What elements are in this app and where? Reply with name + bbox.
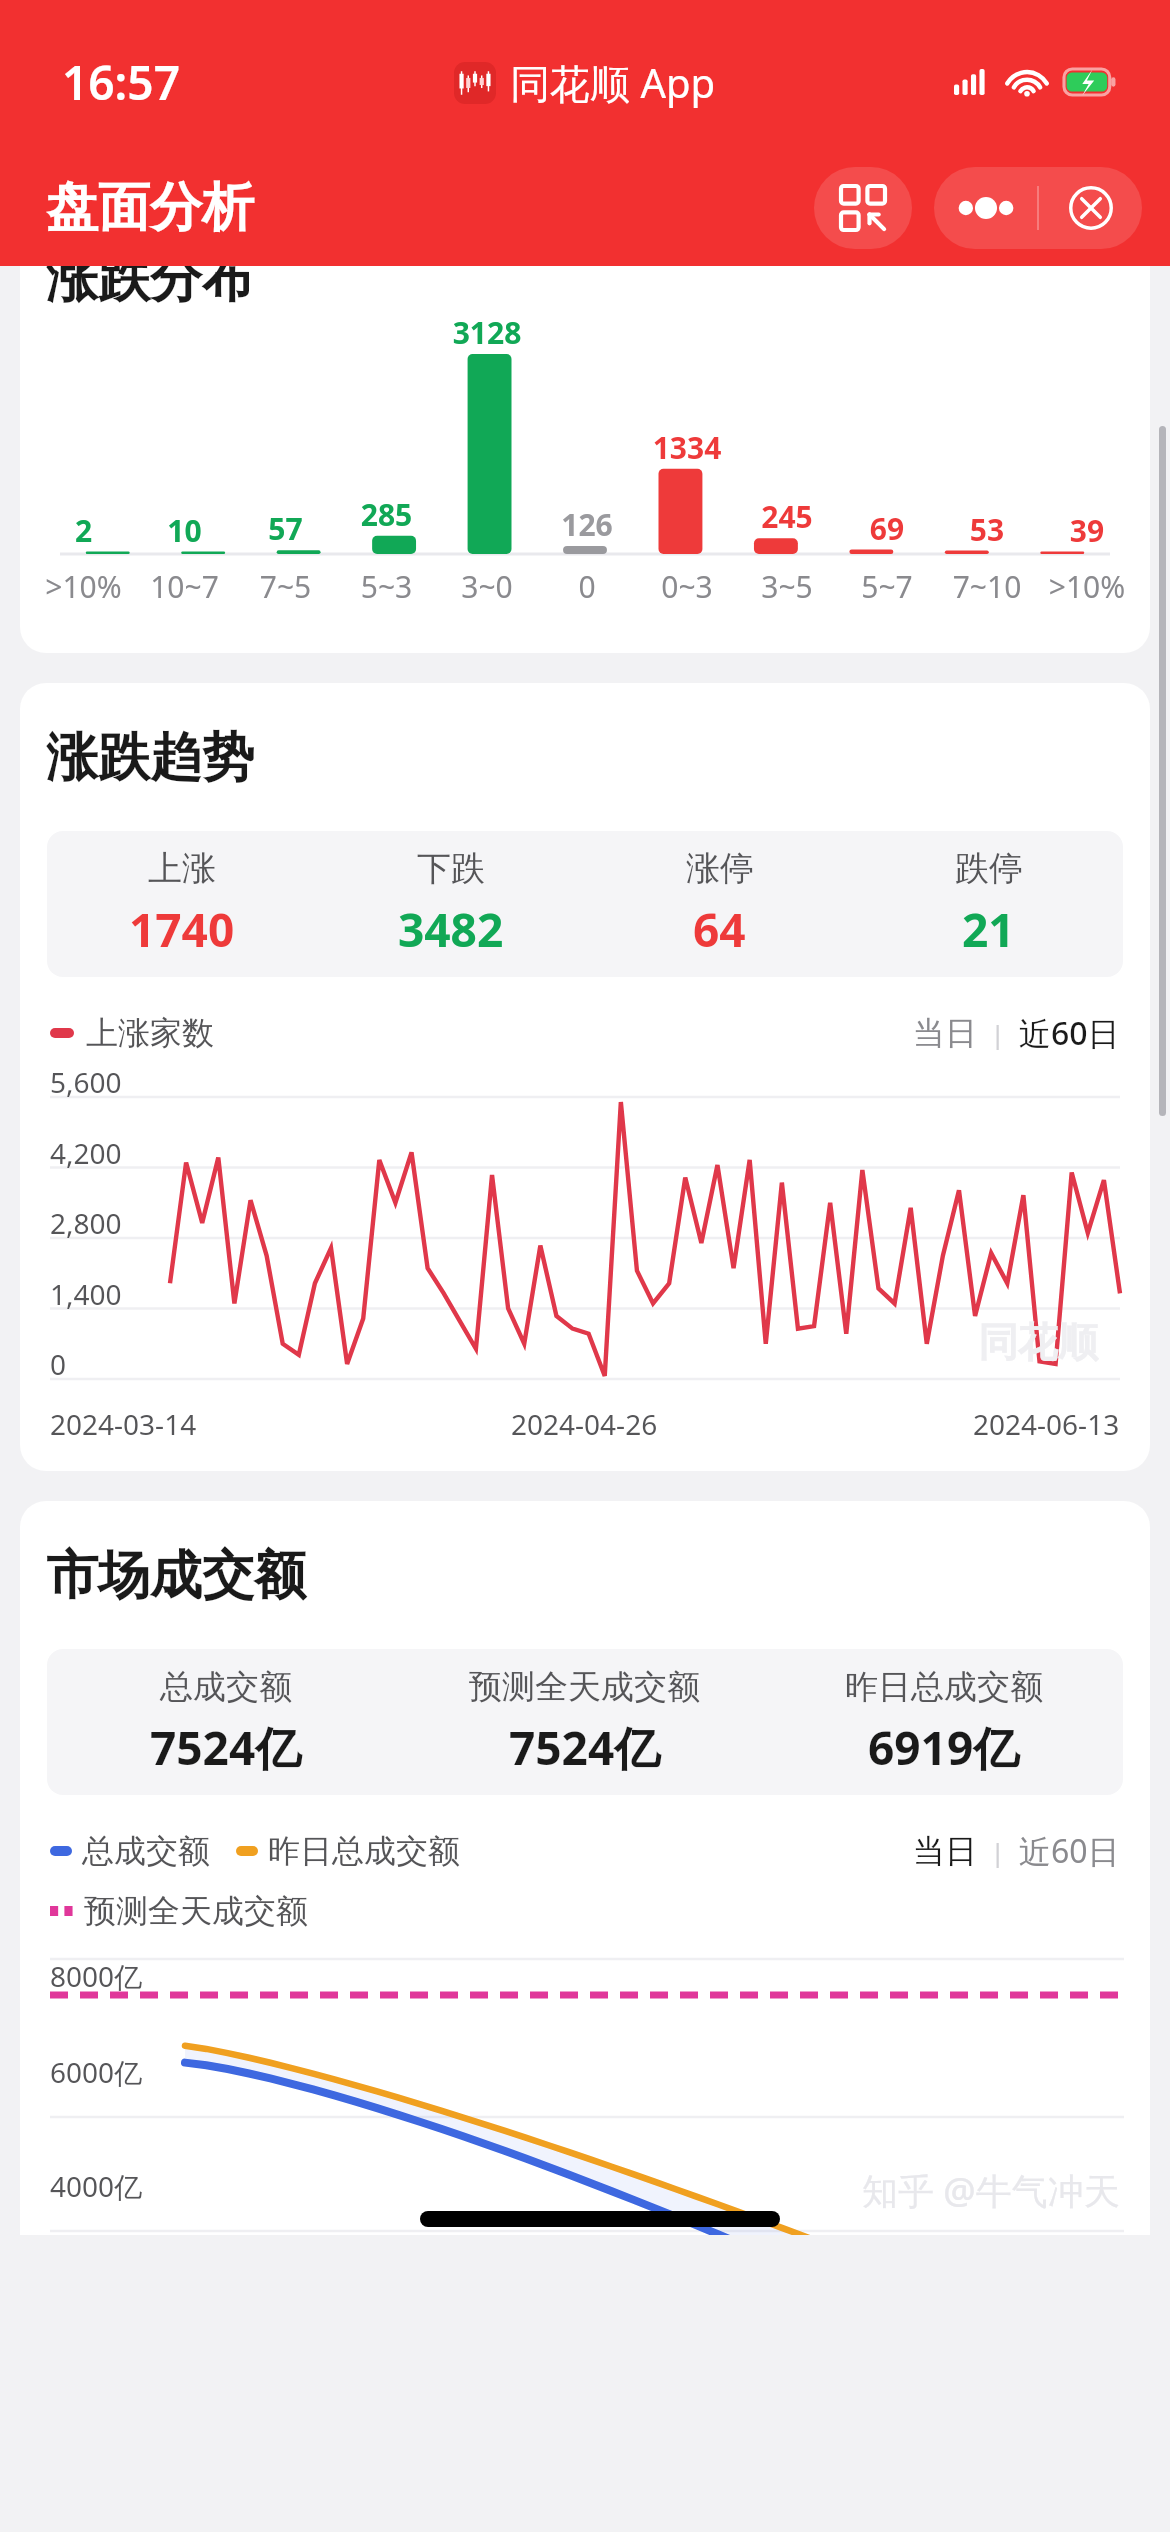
staticText: 当日 xyxy=(913,1831,977,1871)
button[interactable]: 关闭 xyxy=(1039,167,1142,249)
staticText: 126 xyxy=(537,504,637,545)
staticText: 1334 xyxy=(637,427,737,468)
button[interactable]: 涨停 xyxy=(585,831,854,977)
staticText: 涨停 xyxy=(686,847,754,890)
staticText: 当日 xyxy=(913,1013,977,1053)
button[interactable]: 近60日 xyxy=(1019,1829,1120,1873)
button[interactable]: 更多 xyxy=(934,167,1142,249)
staticText: >10% xyxy=(33,566,134,607)
staticText: 2024-03-14 xyxy=(50,1405,197,1443)
staticText: 57 xyxy=(235,508,336,549)
staticText: 3~0 xyxy=(437,566,537,607)
staticText: 近60日 xyxy=(1019,1011,1120,1055)
button[interactable]: 当日 xyxy=(913,1831,977,1871)
button[interactable]: 市场成交额 xyxy=(20,1501,1150,2235)
button[interactable]: 下跌 xyxy=(316,831,585,977)
staticText: 6919亿 xyxy=(868,1716,1020,1779)
staticText: >10% xyxy=(1037,566,1137,607)
staticText: 7524亿 xyxy=(150,1716,302,1779)
staticText: 10~7 xyxy=(134,566,235,607)
button[interactable]: 涨跌趋势 xyxy=(20,683,1150,1471)
staticText: 预测全天成交额 xyxy=(84,1891,308,1931)
staticText: 总成交额 xyxy=(82,1831,210,1871)
staticText: 同花顺 App xyxy=(510,55,716,110)
staticText: 2024-06-13 xyxy=(973,1405,1120,1443)
staticText: | xyxy=(977,1834,1019,1869)
button[interactable]: 当日 xyxy=(913,1013,977,1053)
staticText: 4,200 xyxy=(50,1134,122,1172)
staticText: 1740 xyxy=(129,898,235,961)
staticText: 5~3 xyxy=(336,566,437,607)
staticText: 3~5 xyxy=(737,566,837,607)
staticText: 下跌 xyxy=(417,847,485,890)
staticText: 0~3 xyxy=(637,566,737,607)
staticText: | xyxy=(977,1016,1019,1051)
staticText: 2024-04-26 xyxy=(511,1405,658,1443)
button[interactable]: 上涨 xyxy=(47,831,316,977)
staticText: 总成交额 xyxy=(160,1666,292,1708)
staticText: 21 xyxy=(962,898,1015,961)
staticText: 知乎 @牛气冲天 xyxy=(862,2166,1120,2215)
staticText: 7~5 xyxy=(235,566,336,607)
staticText: 64 xyxy=(693,898,746,961)
staticText: 昨日总成交额 xyxy=(268,1831,460,1871)
button[interactable]: 预测全天成交额 xyxy=(405,1649,764,1795)
staticText: 盘面分析 xyxy=(46,175,254,241)
staticText: 7~10 xyxy=(937,566,1037,607)
staticText: 53 xyxy=(937,509,1037,550)
staticText: 6000亿 xyxy=(50,2053,143,2091)
staticText: 69 xyxy=(837,508,937,549)
staticText: 预测全天成交额 xyxy=(469,1666,700,1708)
staticText: 市场成交额 xyxy=(46,1543,306,1609)
button[interactable]: 近60日 xyxy=(1019,1011,1120,1055)
button[interactable]: 昨日总成交额 xyxy=(764,1649,1123,1795)
staticText: 2,800 xyxy=(50,1204,122,1242)
staticText: 2 xyxy=(33,510,134,551)
staticText: 上涨 xyxy=(148,847,216,890)
staticText: 近60日 xyxy=(1019,1829,1120,1873)
staticText: 同花顺 xyxy=(978,1317,1098,1367)
staticText: 16:57 xyxy=(62,51,180,114)
button[interactable]: 总成交额 xyxy=(47,1649,405,1795)
staticText: 10 xyxy=(134,510,235,551)
staticText: 285 xyxy=(336,494,437,535)
staticText: 1,400 xyxy=(50,1275,122,1313)
staticText: 3128 xyxy=(437,312,537,353)
button[interactable]: 小程序 xyxy=(814,167,912,249)
staticText: 245 xyxy=(737,496,837,537)
staticText: 涨跌分布 xyxy=(46,266,254,312)
button[interactable]: 跌停 xyxy=(854,831,1123,977)
staticText: 4000亿 xyxy=(50,2167,143,2205)
staticText: 0 xyxy=(537,566,637,607)
staticText: 上涨家数 xyxy=(86,1013,214,1053)
staticText: 跌停 xyxy=(955,847,1023,890)
staticText: 3482 xyxy=(398,898,504,961)
staticText: 0 xyxy=(50,1345,67,1383)
staticText: 涨跌趋势 xyxy=(46,725,254,791)
staticText: 7524亿 xyxy=(509,1716,661,1779)
staticText: 39 xyxy=(1037,510,1137,551)
staticText: 5,600 xyxy=(50,1063,122,1101)
staticText: 昨日总成交额 xyxy=(845,1666,1043,1708)
staticText: 8000亿 xyxy=(50,1957,143,1995)
staticText: 5~7 xyxy=(837,566,937,607)
button[interactable]: 涨跌分布 xyxy=(20,266,1150,653)
button[interactable]: 更多 xyxy=(934,167,1037,249)
